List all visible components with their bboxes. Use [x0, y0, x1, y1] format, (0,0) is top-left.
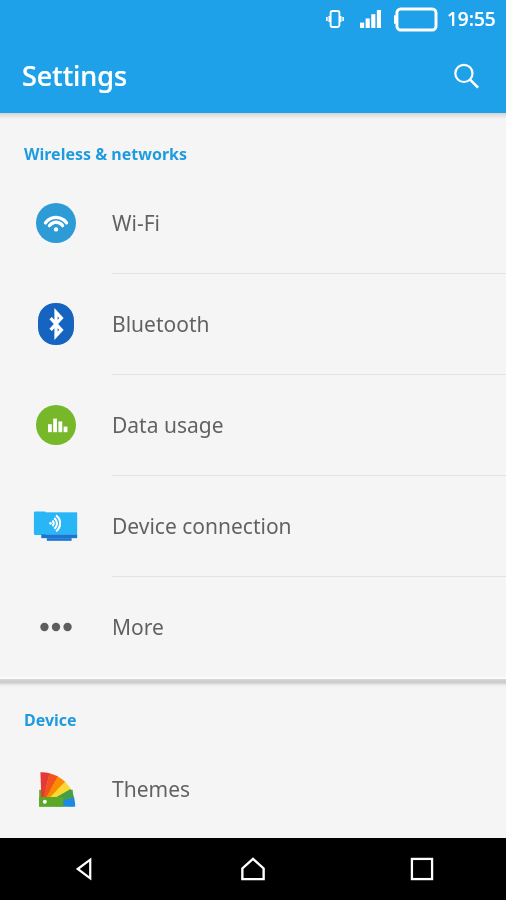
button[interactable]: Data usage	[0, 375, 506, 476]
staticText: Device connection	[112, 512, 292, 541]
staticText: Themes	[112, 775, 191, 804]
staticText: Wi-Fi	[112, 209, 161, 238]
staticText: 19:55	[447, 6, 496, 32]
button[interactable]: Themes	[0, 739, 506, 839]
staticText: Settings	[22, 57, 128, 94]
staticText: Bluetooth	[112, 310, 210, 339]
button[interactable]: More	[0, 577, 506, 677]
button[interactable]: Search	[440, 50, 492, 102]
staticText: Device	[24, 709, 77, 731]
button[interactable]: Recent apps	[337, 838, 506, 900]
staticText: Wireless & networks	[24, 143, 188, 165]
button[interactable]: Home	[168, 838, 337, 900]
button[interactable]: Bluetooth	[0, 274, 506, 375]
staticText: More	[112, 613, 164, 642]
staticText: Data usage	[112, 411, 224, 440]
button[interactable]: Back	[0, 838, 168, 900]
button[interactable]: Device connection	[0, 476, 506, 577]
button[interactable]: Wi-Fi	[0, 173, 506, 274]
